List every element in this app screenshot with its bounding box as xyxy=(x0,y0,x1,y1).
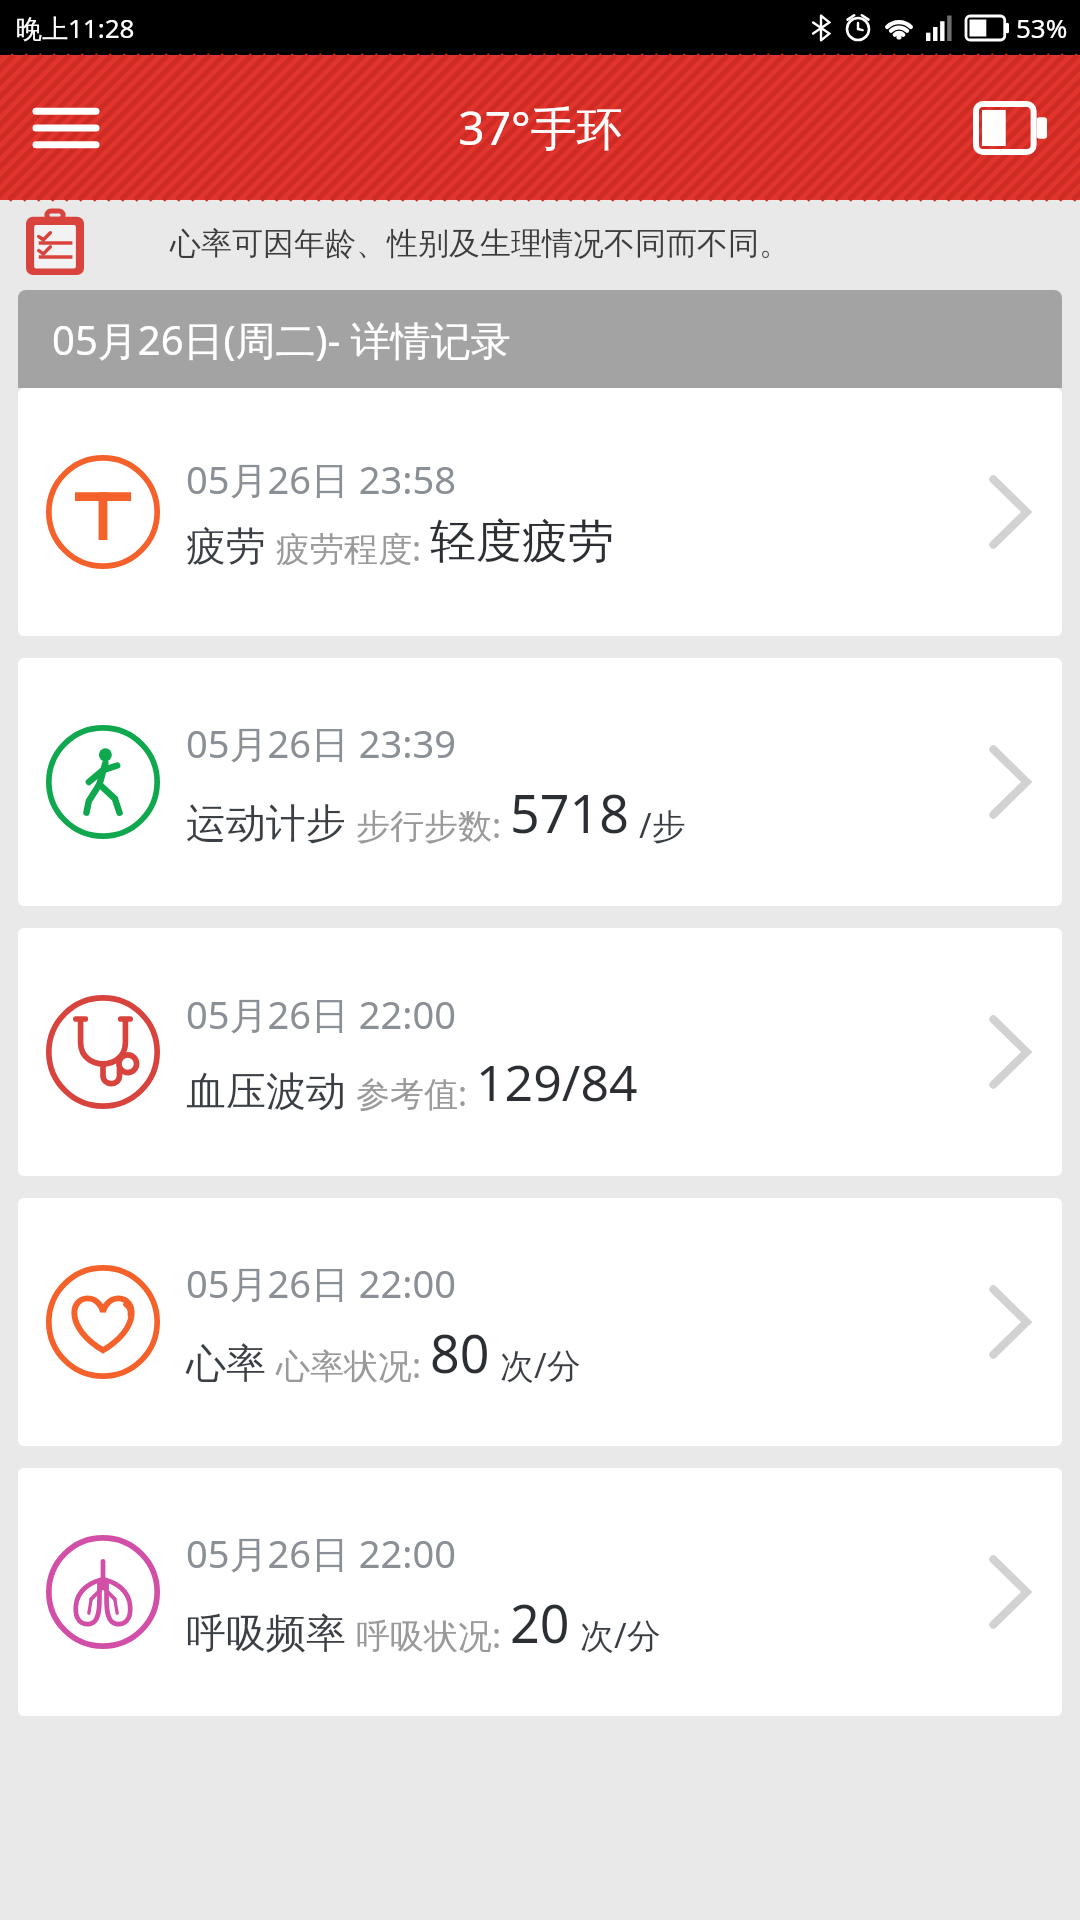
staticText: 05月26日 22:00 xyxy=(186,1257,456,1309)
button[interactable]: 05月26日 22:00 xyxy=(18,928,1062,1176)
staticText: 次/分 xyxy=(580,1612,661,1658)
staticText: 血压波动 xyxy=(186,1066,346,1116)
staticText: 53% xyxy=(1016,10,1068,45)
staticText: 80 xyxy=(430,1317,490,1388)
button[interactable]: 05月26日 23:58 xyxy=(18,388,1062,636)
staticText: 运动计步 xyxy=(186,798,346,848)
staticText: 05月26日 22:00 xyxy=(186,1527,456,1579)
staticText: 心率可因年龄、性别及生理情况不同而不同。 xyxy=(170,224,790,263)
staticText: 参考值: xyxy=(356,1070,468,1116)
staticText: 5718 xyxy=(510,777,629,848)
staticText: 呼吸状况: xyxy=(356,1612,502,1658)
button[interactable]: 05月26日 23:39 xyxy=(18,658,1062,906)
staticText: 疲劳程度: xyxy=(276,525,422,571)
button[interactable]: 05月26日 22:00 xyxy=(18,1468,1062,1716)
staticText: 05月26日 22:00 xyxy=(186,988,456,1040)
staticText: 晚上11:28 xyxy=(16,10,135,46)
staticText: 疲劳 xyxy=(186,521,266,571)
staticText: 次/分 xyxy=(500,1342,581,1388)
staticText: 05月26日(周二)- 详情记录 xyxy=(52,312,511,367)
button[interactable]: Menu xyxy=(24,86,108,170)
button[interactable]: 05月26日 22:00 xyxy=(18,1198,1062,1446)
staticText: 步行步数: xyxy=(356,802,502,848)
staticText: 129/84 xyxy=(476,1048,638,1116)
staticText: 心率 xyxy=(186,1338,266,1388)
staticText: 37°手环 xyxy=(458,96,623,159)
staticText: 05月26日 23:58 xyxy=(186,453,456,505)
staticText: /步 xyxy=(639,802,686,848)
button[interactable]: 05月26日(周二)- 详情记录 xyxy=(18,290,1062,388)
staticText: 20 xyxy=(510,1587,570,1658)
staticText: 心率状况: xyxy=(276,1342,422,1388)
staticText: 05月26日 23:39 xyxy=(186,717,456,769)
staticText: 呼吸频率 xyxy=(186,1608,346,1658)
staticText: 轻度疲劳 xyxy=(430,513,614,571)
button[interactable]: Battery status xyxy=(964,82,1056,174)
